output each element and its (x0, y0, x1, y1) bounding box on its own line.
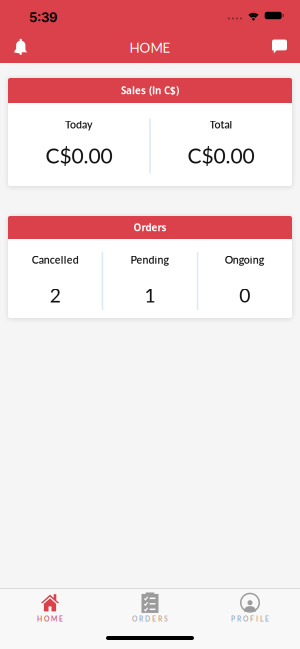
staticText: Sales (In C$) (121, 84, 179, 97)
staticText: C$0.00 (187, 143, 254, 168)
staticText: H O M E (37, 615, 63, 623)
staticText: 2 (50, 283, 61, 307)
button[interactable]: P R O F I L E (200, 593, 300, 623)
staticText: Pending (130, 253, 169, 266)
staticText: C$0.00 (45, 143, 112, 168)
staticText: Today (65, 118, 93, 131)
staticText: 1 (144, 283, 155, 307)
staticText: 0 (239, 283, 250, 307)
button[interactable]: Notifications (0, 38, 28, 55)
staticText: 5:39 (29, 10, 57, 25)
staticText: Cancelled (32, 253, 79, 266)
button[interactable]: Messages (272, 39, 300, 53)
staticText: P R O F I L E (231, 615, 269, 623)
button[interactable]: O R D E R S (100, 593, 200, 623)
button[interactable]: H O M E (0, 593, 100, 623)
staticText: Ongoing (225, 253, 265, 266)
staticText: Total (209, 118, 232, 131)
staticText: Orders (133, 221, 166, 234)
staticText: HOME (129, 39, 170, 56)
staticText: O R D E R S (132, 615, 168, 623)
